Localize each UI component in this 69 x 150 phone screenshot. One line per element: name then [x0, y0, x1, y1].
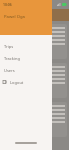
- staticText: 10:06: [3, 2, 12, 7]
- button[interactable]: Tracking: [0, 52, 52, 64]
- button[interactable]: Users: [0, 64, 52, 76]
- other: Logout: [3, 80, 7, 84]
- staticText: Logout: [10, 80, 24, 85]
- button[interactable]: Logout: [0, 76, 52, 88]
- staticText: Pawel Oga: [4, 14, 25, 20]
- staticText: Trips: [4, 44, 14, 49]
- staticText: Users: [4, 68, 15, 73]
- button[interactable]: Trips: [0, 40, 52, 52]
- staticText: Tracking: [4, 56, 20, 61]
